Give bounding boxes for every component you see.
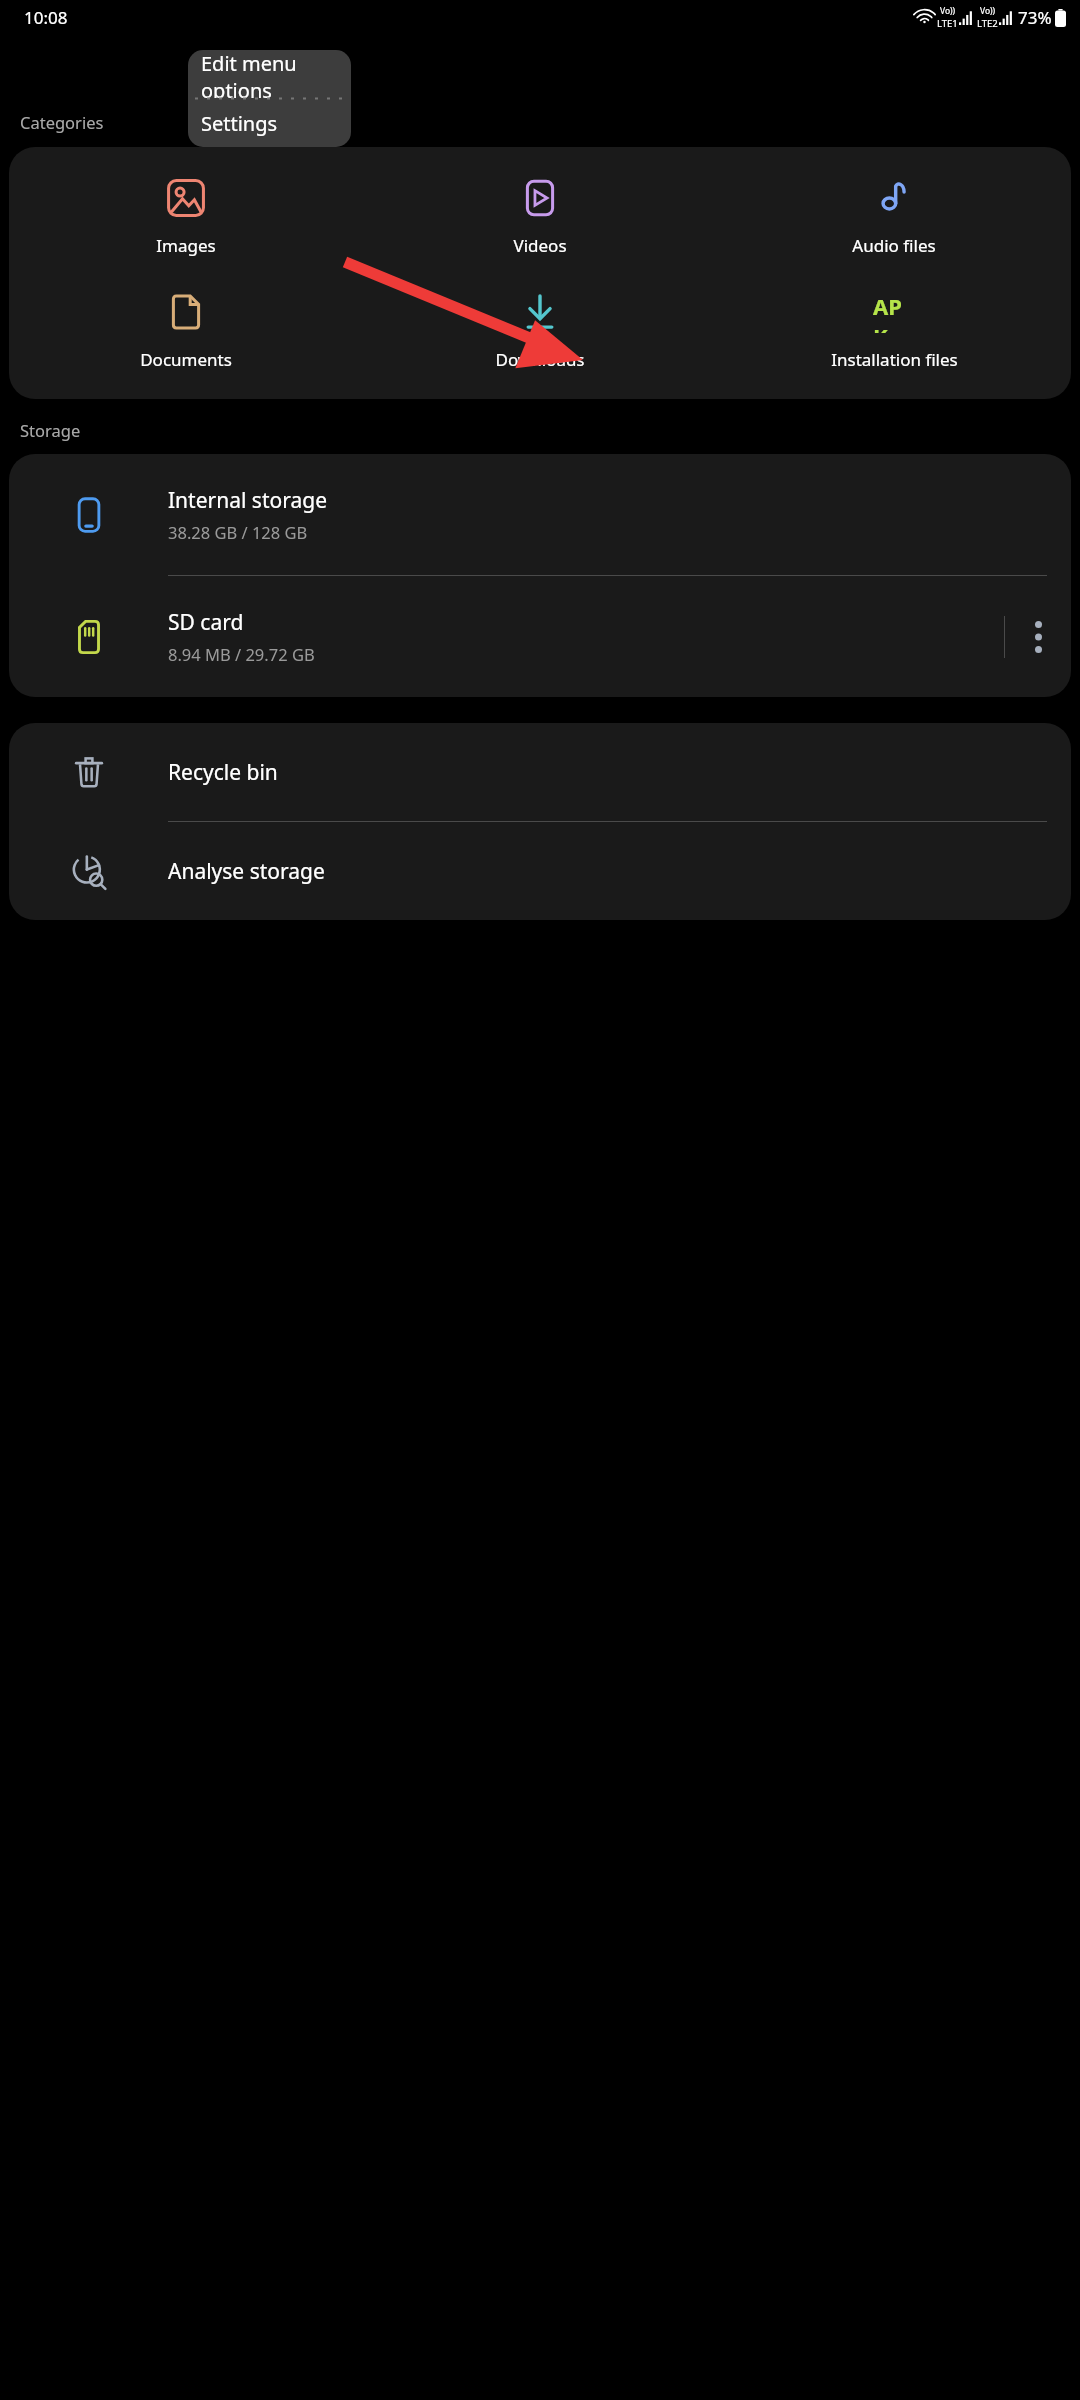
button[interactable]: APK bbox=[717, 283, 1071, 377]
button[interactable]: SD card bbox=[9, 576, 1071, 697]
staticText: Vo)) bbox=[980, 5, 996, 17]
staticText: 73% bbox=[1018, 6, 1052, 29]
staticText: LTE2 bbox=[977, 17, 998, 30]
button[interactable]: More options bbox=[1005, 576, 1071, 697]
button[interactable]: Documents bbox=[9, 283, 363, 377]
staticText: Recycle bin bbox=[168, 758, 278, 787]
button[interactable]: Settings bbox=[188, 99, 351, 147]
staticText: Audio files bbox=[852, 234, 936, 257]
button[interactable]: Analyse storage bbox=[9, 822, 1071, 920]
button[interactable]: Internal storage bbox=[9, 454, 1071, 575]
staticText: Storage bbox=[20, 419, 81, 441]
staticText: 10:08 bbox=[24, 6, 68, 29]
staticText: 8.94 MB / 29.72 GB bbox=[168, 643, 315, 665]
staticText: Categories bbox=[20, 111, 104, 133]
button[interactable]: Edit menu options bbox=[188, 50, 351, 98]
button[interactable]: Images bbox=[9, 169, 363, 263]
button[interactable]: Recycle bin bbox=[9, 723, 1071, 821]
staticText: Installation files bbox=[831, 348, 958, 371]
staticText: LTE1 bbox=[937, 17, 958, 30]
staticText: Documents bbox=[140, 348, 232, 371]
button[interactable]: Downloads bbox=[363, 283, 717, 377]
button[interactable]: Audio files bbox=[717, 169, 1071, 263]
staticText: Vo)) bbox=[940, 5, 956, 17]
staticText: 38.28 GB / 128 GB bbox=[168, 521, 308, 543]
staticText: Edit menu options bbox=[201, 50, 351, 98]
staticText: APK bbox=[873, 291, 915, 333]
staticText: Images bbox=[156, 234, 216, 257]
staticText: Videos bbox=[513, 234, 567, 257]
staticText: Settings bbox=[201, 110, 278, 137]
staticText: Internal storage bbox=[168, 486, 327, 515]
button[interactable]: Videos bbox=[363, 169, 717, 263]
staticText: SD card bbox=[168, 608, 244, 637]
staticText: Analyse storage bbox=[168, 857, 325, 886]
staticText: Downloads bbox=[495, 348, 585, 371]
